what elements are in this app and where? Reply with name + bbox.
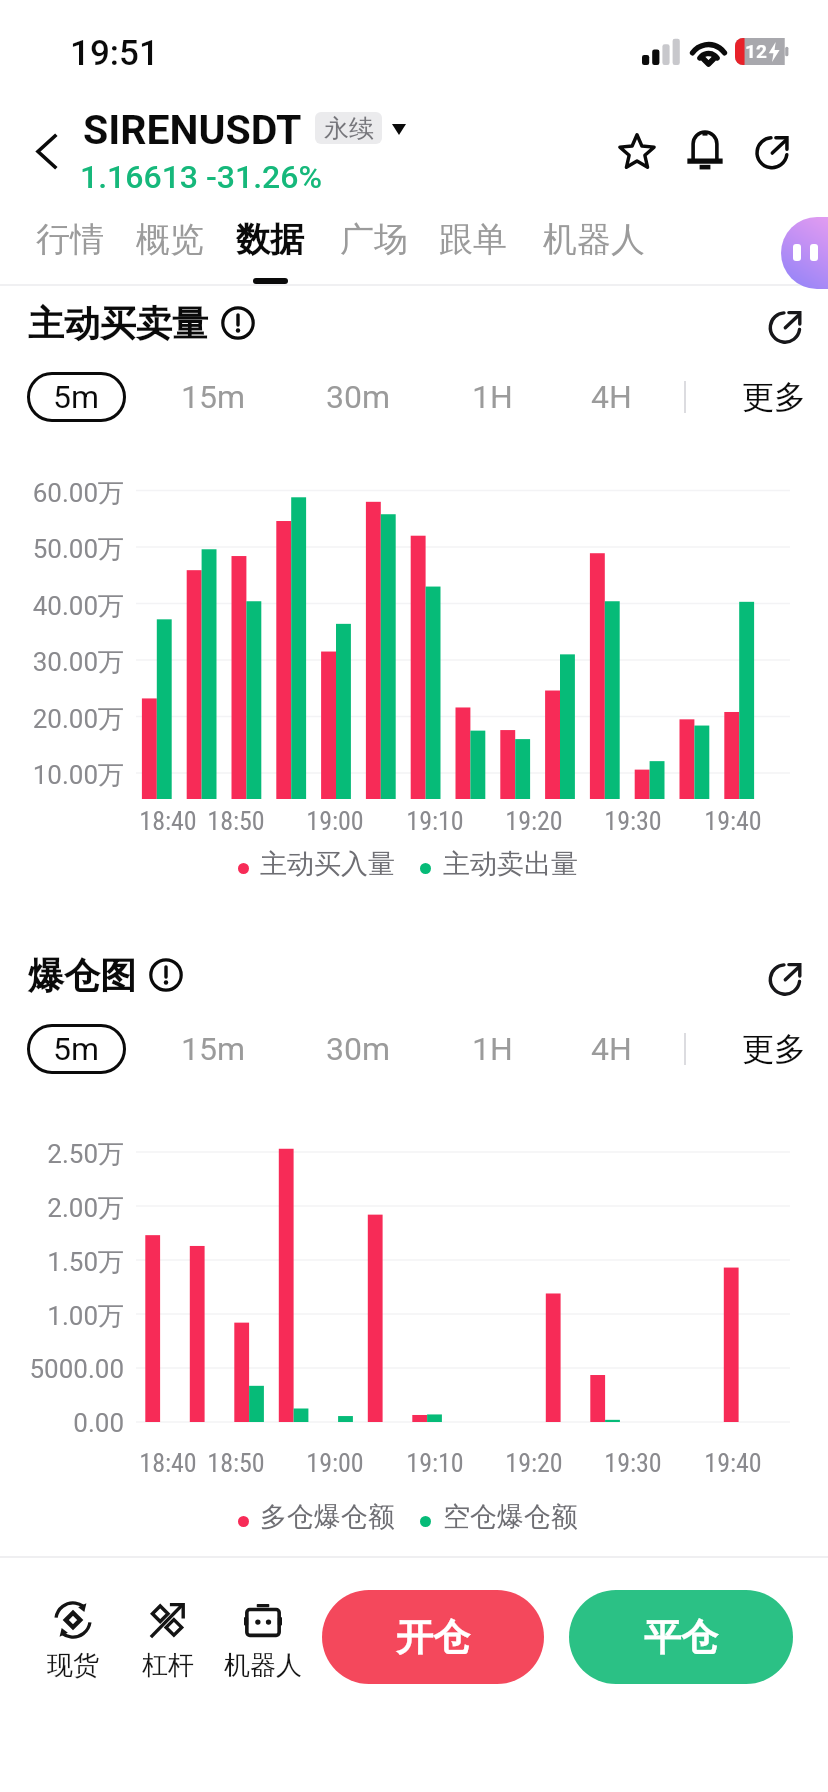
staticText: 更多 xyxy=(742,377,806,417)
button[interactable]: 行情 xyxy=(22,206,118,284)
button[interactable]: 机器人 xyxy=(207,1601,319,1681)
staticText: 30m xyxy=(326,1030,391,1068)
staticText: 机器人 xyxy=(224,1649,302,1681)
button[interactable]: 概览 xyxy=(124,206,216,284)
staticText: 1.00万 xyxy=(4,1300,124,1333)
button[interactable]: 广场 xyxy=(325,206,423,284)
staticText: 10.00万 xyxy=(4,759,124,792)
staticText: 机器人 xyxy=(543,218,645,261)
button[interactable]: 跟单 xyxy=(423,206,523,284)
staticText: 30.00万 xyxy=(4,646,124,679)
button[interactable]: 平仓 xyxy=(569,1590,793,1684)
staticText: 18:40 xyxy=(123,1448,213,1478)
staticText: 40.00万 xyxy=(4,590,124,623)
staticText: 杠杆 xyxy=(142,1649,194,1681)
button[interactable]: 更多 xyxy=(726,1024,828,1074)
button[interactable]: 机器人 xyxy=(528,206,660,284)
staticText: 50.00万 xyxy=(4,533,124,566)
staticText: 主动卖出量 xyxy=(443,847,578,881)
staticText: 19:30 xyxy=(588,806,678,836)
staticText: 概览 xyxy=(136,218,204,261)
staticText: 0.00 xyxy=(4,1408,124,1438)
staticText: 19:20 xyxy=(489,1448,579,1478)
button[interactable]: 杠杆 xyxy=(112,1601,224,1681)
button[interactable]: 4H xyxy=(572,372,650,422)
button[interactable]: 1H xyxy=(453,1024,531,1074)
button[interactable]: 5m xyxy=(27,372,126,422)
staticText: 行情 xyxy=(36,218,104,261)
staticText: 19:20 xyxy=(489,806,579,836)
staticText: 19:40 xyxy=(688,806,778,836)
staticText: 爆仓图 xyxy=(28,953,136,998)
staticText: 5m xyxy=(53,1030,100,1068)
staticText: 4H xyxy=(591,1030,632,1068)
staticText: 主动买入量 xyxy=(260,847,395,881)
staticText: 1H xyxy=(472,1030,513,1068)
staticText: 5000.00 xyxy=(4,1354,124,1384)
button[interactable]: 30m xyxy=(308,372,408,422)
staticText: 空仓爆仓额 xyxy=(443,1500,578,1534)
staticText: 现货 xyxy=(47,1649,99,1681)
button[interactable]: 15m xyxy=(163,1024,263,1074)
button[interactable]: Alerts xyxy=(676,123,734,181)
button[interactable]: 5m xyxy=(27,1024,126,1074)
staticText: 1.50万 xyxy=(4,1246,124,1279)
staticText: 1.16613 -31.26% xyxy=(80,158,323,196)
button[interactable]: Assistant xyxy=(781,217,828,289)
staticText: 主动买卖量 xyxy=(28,301,208,346)
staticText: 4H xyxy=(591,378,632,416)
button[interactable]: Open full chart xyxy=(759,953,811,1005)
staticText: 18:50 xyxy=(191,1448,281,1478)
button[interactable]: Open full chart xyxy=(759,301,811,353)
staticText: SIRENUSDT xyxy=(83,106,302,154)
button[interactable]: 30m xyxy=(308,1024,408,1074)
staticText: 19:00 xyxy=(290,806,380,836)
staticText: 5m xyxy=(53,378,100,416)
staticText: 2.50万 xyxy=(4,1138,124,1171)
staticText: 广场 xyxy=(340,218,408,261)
staticText: 更多 xyxy=(742,1029,806,1069)
button[interactable]: 爆仓图 xyxy=(28,952,183,998)
staticText: 15m xyxy=(181,1030,246,1068)
button[interactable]: 4H xyxy=(572,1024,650,1074)
staticText: 19:40 xyxy=(688,1448,778,1478)
staticText: 永续 xyxy=(324,113,374,144)
staticText: 19:10 xyxy=(390,806,480,836)
staticText: 2.00万 xyxy=(4,1192,124,1225)
button[interactable]: Favorite xyxy=(608,123,666,181)
button[interactable]: 开仓 xyxy=(322,1590,544,1684)
staticText: 开仓 xyxy=(396,1614,470,1661)
button[interactable]: 数据 xyxy=(217,206,323,284)
button[interactable]: Share xyxy=(743,123,801,181)
staticText: 多仓爆仓额 xyxy=(260,1500,395,1534)
staticText: 15m xyxy=(181,378,246,416)
staticText: 18:50 xyxy=(191,806,281,836)
staticText: 19:00 xyxy=(290,1448,380,1478)
staticText: 1H xyxy=(472,378,513,416)
button[interactable]: Back xyxy=(13,118,79,184)
staticText: 60.00万 xyxy=(4,477,124,510)
button[interactable]: 主动买卖量 xyxy=(28,300,255,346)
button[interactable]: 更多 xyxy=(726,372,828,422)
staticText: 12 xyxy=(745,40,767,62)
staticText: 平仓 xyxy=(644,1614,718,1661)
button[interactable]: 现货 xyxy=(17,1601,129,1681)
button[interactable]: 1H xyxy=(453,372,531,422)
staticText: 19:30 xyxy=(588,1448,678,1478)
staticText: 20.00万 xyxy=(4,703,124,736)
staticText: 跟单 xyxy=(439,218,507,261)
staticText: 19:51 xyxy=(70,33,159,74)
staticText: 30m xyxy=(326,378,391,416)
button[interactable]: 15m xyxy=(163,372,263,422)
staticText: 数据 xyxy=(236,218,304,261)
staticText: 18:40 xyxy=(123,806,213,836)
staticText: 19:10 xyxy=(390,1448,480,1478)
